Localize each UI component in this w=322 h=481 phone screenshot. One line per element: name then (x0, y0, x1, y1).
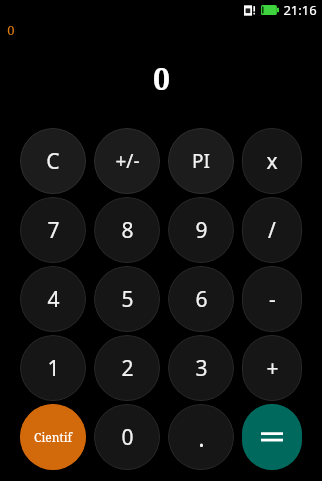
staticText: 6 (195, 285, 208, 314)
staticText: 0 (153, 58, 170, 99)
button[interactable]: - (242, 266, 302, 332)
staticText: 21:16 (283, 1, 317, 19)
staticText: +/- (115, 148, 140, 174)
staticText: - (269, 285, 276, 314)
button[interactable]: C (20, 128, 86, 194)
button[interactable]: / (242, 197, 302, 263)
staticText: C (46, 147, 60, 176)
button[interactable]: 0 (94, 404, 160, 470)
staticText: 4 (47, 285, 60, 314)
staticText: 1 (47, 354, 60, 383)
staticText: 3 (195, 354, 208, 383)
staticText: 5 (121, 285, 134, 314)
button[interactable]: x (242, 128, 302, 194)
staticText: x (266, 147, 278, 176)
other: No SIM card (244, 4, 257, 17)
button[interactable]: 3 (168, 335, 234, 401)
button[interactable] (242, 404, 302, 470)
staticText: 9 (195, 216, 208, 245)
button[interactable]: 1 (20, 335, 86, 401)
button[interactable]: + (242, 335, 302, 401)
staticText: + (266, 354, 279, 383)
button[interactable]: PI (168, 128, 234, 194)
button[interactable]: 9 (168, 197, 234, 263)
button[interactable]: Cientif (20, 404, 86, 470)
button[interactable]: 7 (20, 197, 86, 263)
staticText: 7 (47, 216, 60, 245)
staticText: 2 (121, 354, 134, 383)
button[interactable]: 8 (94, 197, 160, 263)
other: Battery full (261, 5, 279, 15)
button[interactable]: +/- (94, 128, 160, 194)
button[interactable]: . (168, 404, 234, 470)
button[interactable]: 4 (20, 266, 86, 332)
staticText: . (198, 421, 205, 454)
staticText: / (268, 216, 276, 245)
button[interactable]: 6 (168, 266, 234, 332)
button[interactable]: 5 (94, 266, 160, 332)
button[interactable]: 2 (94, 335, 160, 401)
staticText: Cientif (34, 429, 72, 445)
staticText: PI (192, 148, 210, 174)
staticText: 0 (121, 423, 134, 452)
staticText: 8 (121, 216, 134, 245)
button[interactable]: 0 (7, 21, 15, 39)
